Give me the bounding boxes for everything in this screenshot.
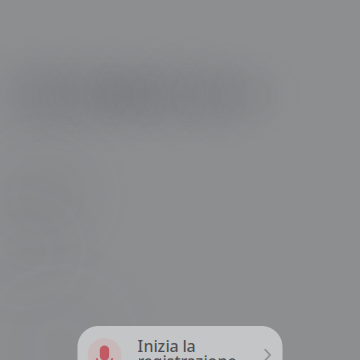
- staticText: Inizia la: [137, 335, 195, 356]
- staticText: registrazione: [137, 350, 236, 360]
- button[interactable]: Inizia la: [77, 326, 282, 360]
